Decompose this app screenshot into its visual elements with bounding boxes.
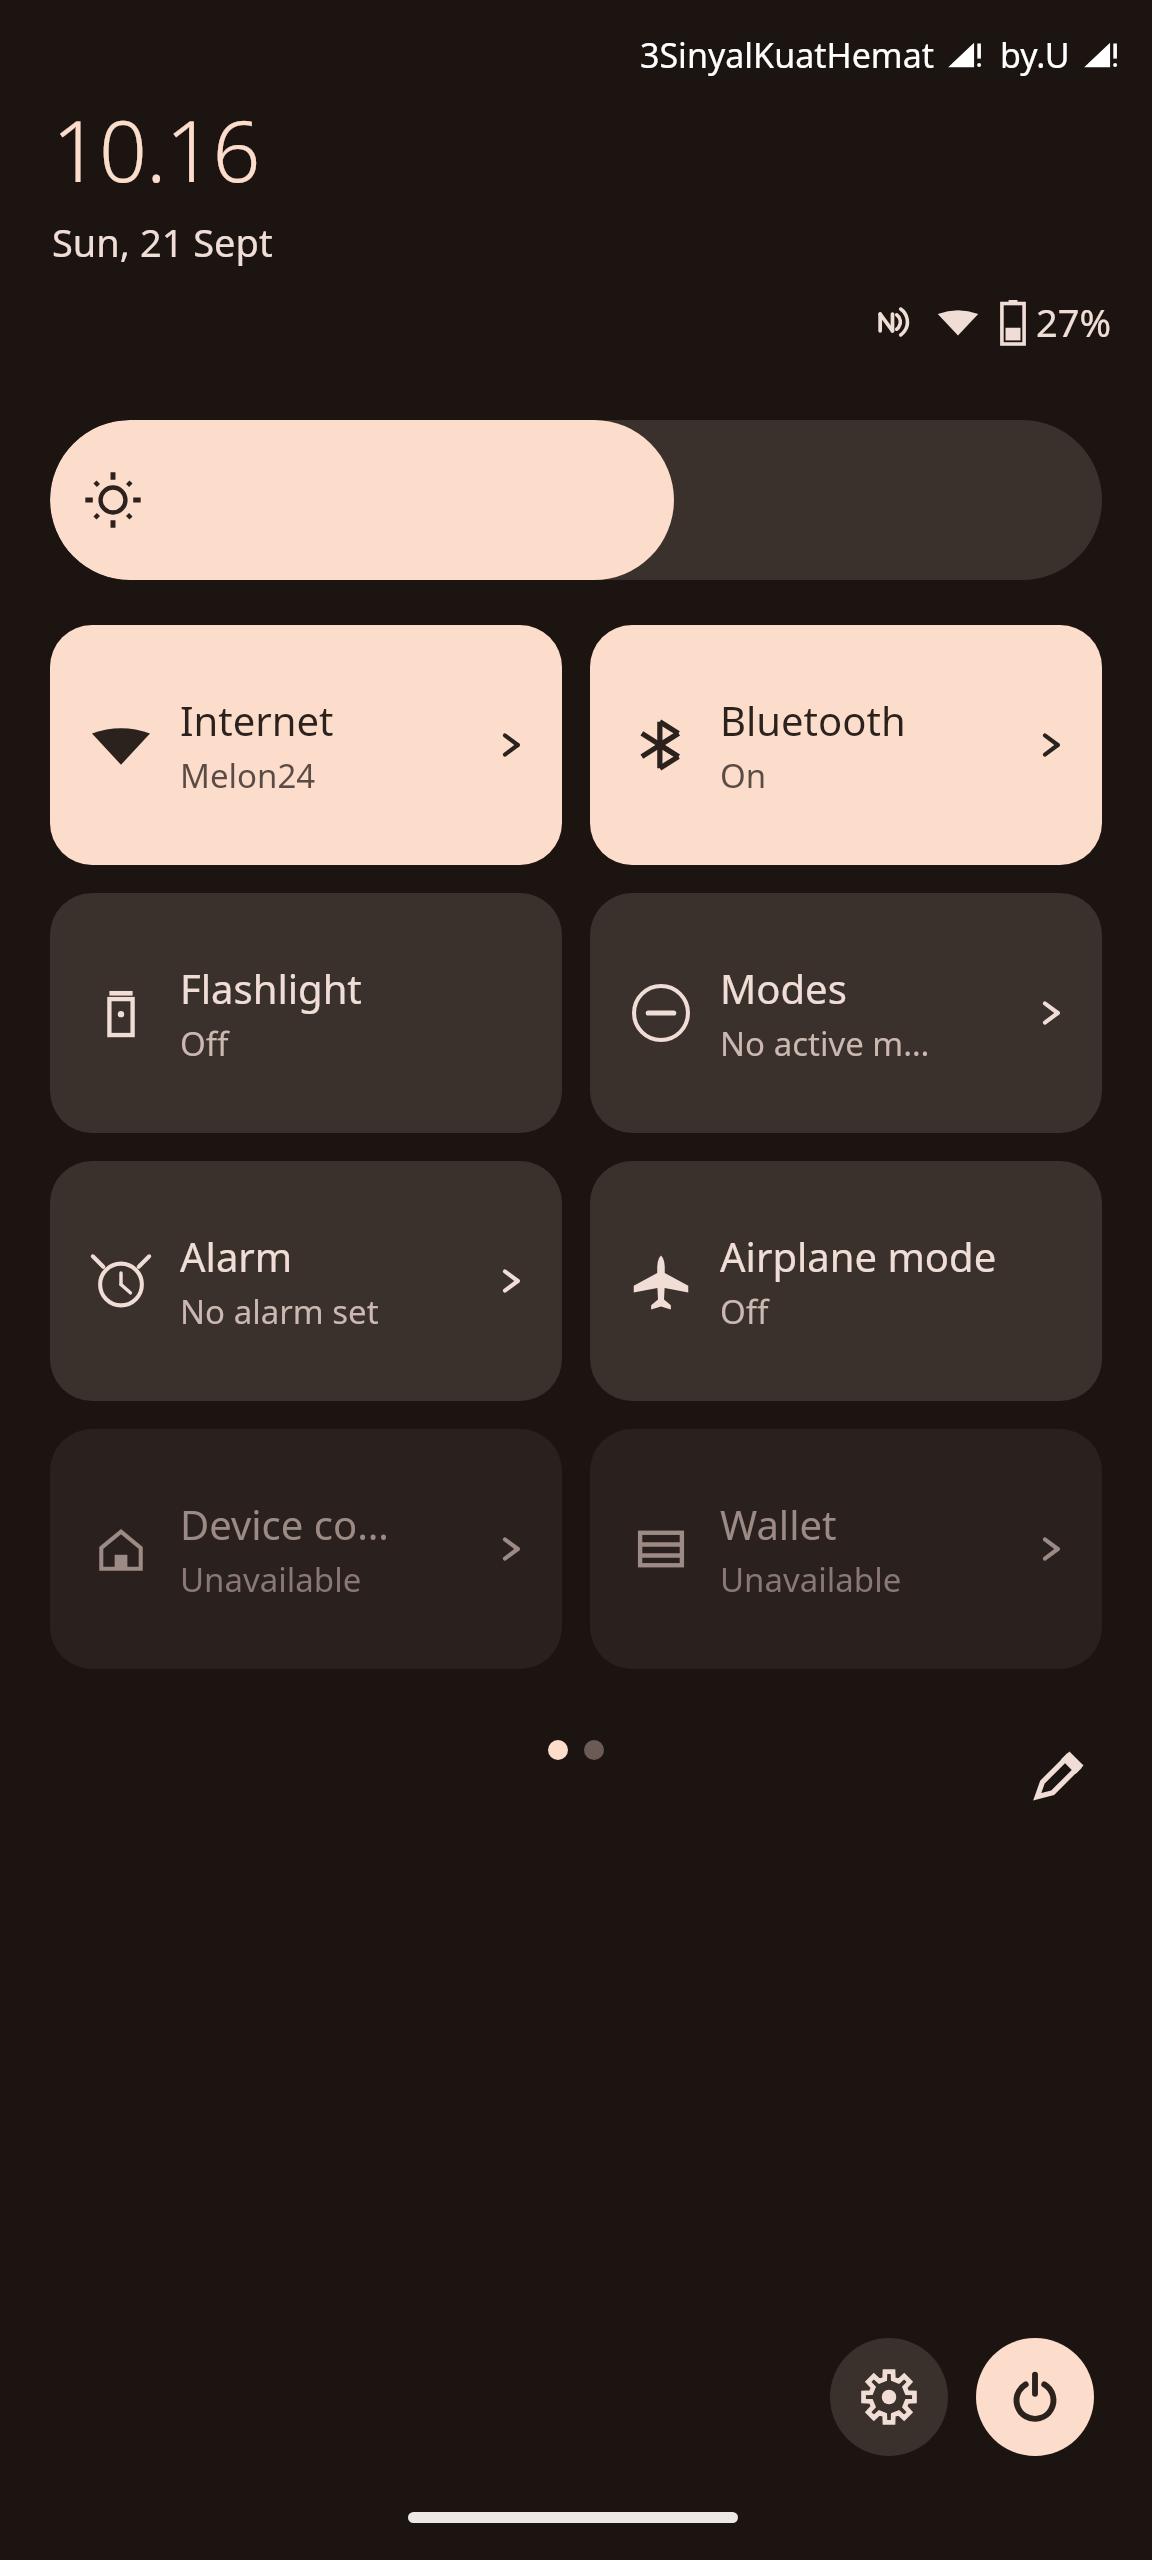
- staticText: Airplane mode: [720, 1229, 997, 1283]
- staticText: Unavailable: [180, 1557, 362, 1602]
- staticText: Bluetooth: [720, 693, 906, 747]
- button[interactable]: Wallet: [590, 1429, 1102, 1669]
- staticText: Unavailable: [720, 1557, 902, 1602]
- staticText: Internet: [180, 693, 334, 747]
- button[interactable]: Power: [976, 2338, 1094, 2456]
- staticText: Device co…: [180, 1497, 389, 1551]
- staticText: 3SinyalKuatHemat: [640, 32, 934, 78]
- staticText: Sun, 21 Sept: [52, 216, 273, 268]
- button[interactable]: Airplane mode: [590, 1161, 1102, 1401]
- staticText: Melon24: [180, 753, 316, 798]
- staticText: Modes: [720, 961, 847, 1015]
- button[interactable]: Modes: [590, 893, 1102, 1133]
- staticText: No active m…: [720, 1021, 930, 1066]
- button[interactable]: Device co…: [50, 1429, 562, 1669]
- staticText: Off: [180, 1021, 229, 1066]
- staticText: Off: [720, 1289, 769, 1334]
- button[interactable]: Brightness: [50, 420, 1102, 580]
- button[interactable]: Alarm: [50, 1161, 562, 1401]
- button[interactable]: Bluetooth: [590, 625, 1102, 865]
- button[interactable]: Edit tiles: [1022, 1740, 1094, 1812]
- staticText: by.U: [1000, 32, 1070, 78]
- button[interactable]: Internet: [50, 625, 562, 865]
- staticText: Flashlight: [180, 961, 362, 1015]
- staticText: No alarm set: [180, 1289, 379, 1334]
- staticText: 27%: [1036, 296, 1112, 348]
- staticText: 10.16: [52, 92, 260, 206]
- staticText: Alarm: [180, 1229, 293, 1283]
- button[interactable]: Settings: [830, 2338, 948, 2456]
- staticText: On: [720, 753, 767, 798]
- button[interactable]: Flashlight: [50, 893, 562, 1133]
- staticText: Wallet: [720, 1497, 837, 1551]
